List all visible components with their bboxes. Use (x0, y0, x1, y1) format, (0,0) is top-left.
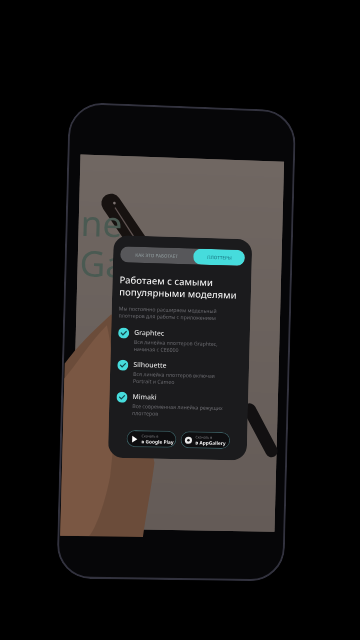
staticText: ne Ga (79, 199, 128, 288)
staticText: Скачать в (195, 434, 212, 440)
staticText: Silhouette (133, 360, 168, 370)
staticText: Вся линейка плоттеров включая Portrait и… (133, 370, 215, 386)
staticText: Вся линейка плоттеров Graphtec, начиная … (134, 338, 218, 354)
staticText: Mimaki (132, 392, 158, 402)
button[interactable]: Скачать в (180, 431, 230, 449)
button[interactable]: КАК ЭТО РАБОТАЕТ (120, 246, 193, 264)
button[interactable]: Скачать в (126, 430, 177, 448)
staticText: в AppGallery (195, 439, 226, 447)
staticText: Скачать в (141, 433, 159, 439)
staticText: ПЛОТТЕРЫ (207, 254, 232, 261)
staticText: КАК ЭТО РАБОТАЕТ (135, 252, 178, 259)
staticText: в Google Play (141, 438, 174, 446)
button[interactable]: ПЛОТТЕРЫ (193, 248, 245, 266)
staticText: Мы постоянно расширяем модельный плоттер… (118, 304, 217, 321)
staticText: Graphtec (134, 328, 164, 338)
staticText: Работаем с самыми популярными моделями (119, 273, 237, 302)
staticText: Все современная линейка режущих плоттеро… (132, 402, 223, 418)
